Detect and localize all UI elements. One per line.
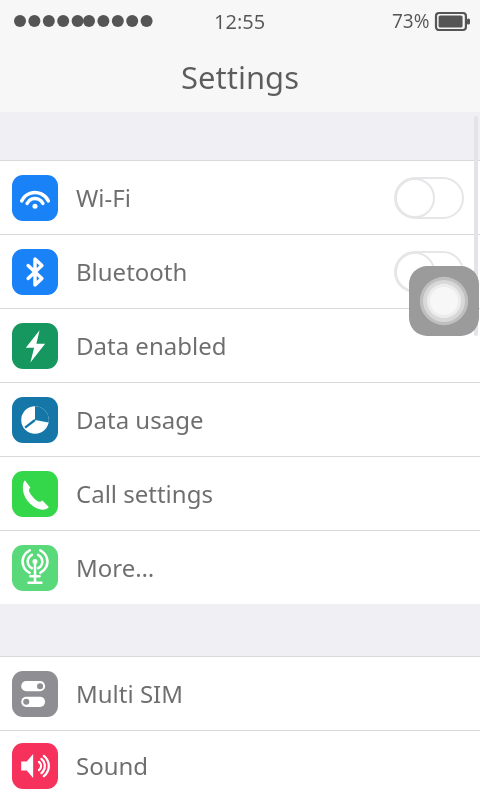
staticText: 73% [392, 8, 430, 34]
button[interactable]: More… [0, 531, 480, 604]
button[interactable]: Multi SIM [0, 657, 480, 730]
button[interactable]: Data enabled [0, 309, 480, 382]
button[interactable]: Assistive touch [409, 266, 479, 336]
staticText: 12:55 [214, 8, 266, 35]
button[interactable]: Bluetooth [0, 235, 480, 308]
button[interactable]: Data usage [0, 383, 480, 456]
staticText: Multi SIM [76, 677, 183, 710]
button[interactable]: Sound [0, 731, 480, 800]
staticText: Data usage [76, 403, 204, 436]
button[interactable]: Call settings [0, 457, 480, 530]
staticText: Data enabled [76, 329, 227, 362]
staticText: Call settings [76, 477, 213, 510]
staticText: Bluetooth [76, 255, 188, 288]
staticText: More… [76, 551, 155, 584]
staticText: Sound [76, 749, 149, 782]
button[interactable]: Toggle [394, 177, 464, 219]
staticText: Wi-Fi [76, 181, 131, 214]
button[interactable]: Toggle [394, 251, 464, 293]
staticText: Settings [181, 56, 299, 98]
button[interactable]: Wi-Fi [0, 161, 480, 234]
